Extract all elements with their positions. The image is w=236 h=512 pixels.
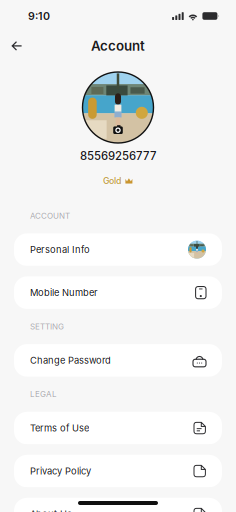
staticText: 9:10: [28, 9, 50, 22]
staticText: LEGAL: [30, 389, 57, 399]
button[interactable]: Back: [4, 33, 30, 59]
button[interactable]: Terms of Use: [0, 412, 236, 444]
button[interactable]: About Us: [0, 498, 236, 512]
button[interactable]: Personal Info: [0, 233, 236, 266]
staticText: Mobile Number: [30, 287, 98, 298]
staticText: Gold: [103, 176, 121, 186]
button[interactable]: Privacy Policy: [0, 455, 236, 487]
button[interactable]: Change Password: [0, 344, 236, 377]
staticText: 85569256777: [80, 149, 156, 163]
staticText: Terms of Use: [30, 422, 89, 434]
staticText: Change Password: [30, 355, 111, 366]
staticText: Privacy Policy: [30, 465, 91, 477]
staticText: Personal Info: [30, 244, 90, 255]
staticText: About Us: [30, 508, 72, 512]
staticText: Account: [91, 38, 145, 54]
staticText: SETTING: [30, 322, 64, 331]
button[interactable]: Mobile Number: [0, 276, 236, 309]
staticText: ACCOUNT: [30, 211, 70, 221]
